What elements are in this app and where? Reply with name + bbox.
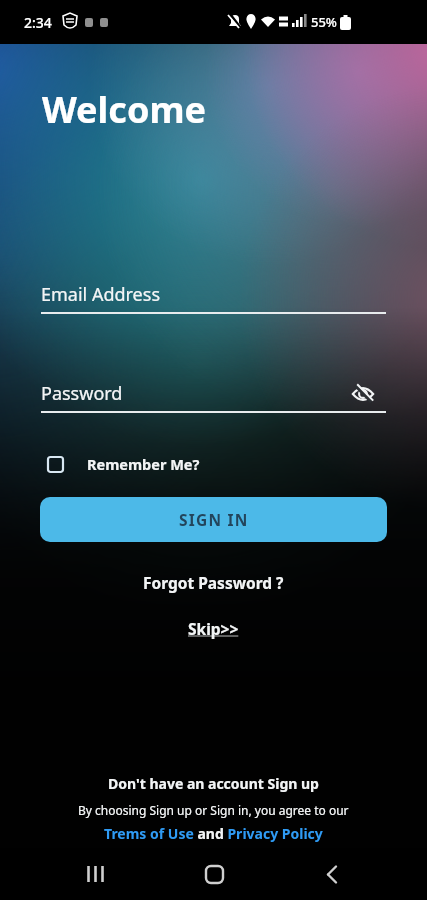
button[interactable]: Skip>> (188, 618, 239, 639)
staticText: Trems of Use and Privacy Policy (104, 824, 323, 843)
button[interactable]: Remember Me? (47, 454, 200, 474)
button[interactable]: SIGN IN (40, 497, 387, 542)
staticText: Welcome (42, 85, 206, 134)
staticText: Remember Me? (87, 454, 200, 474)
button[interactable]: Forgot Password ? (143, 572, 284, 593)
staticText: 2:34 (24, 13, 52, 32)
staticText: By choosing Sign up or Sign in, you agre… (78, 802, 349, 818)
button[interactable]: Trems of Use and Privacy Policy (104, 824, 323, 843)
staticText: Password (41, 381, 123, 406)
button[interactable] (308, 850, 356, 898)
staticText: Forgot Password ? (143, 572, 284, 593)
button[interactable]: Don't have an account Sign up (108, 774, 319, 793)
staticText: 55% (311, 13, 337, 31)
button[interactable]: Email Address (41, 282, 386, 314)
button[interactable]: Password (41, 381, 386, 413)
button[interactable] (190, 850, 238, 898)
staticText: Don't have an account Sign up (108, 774, 319, 793)
staticText: SIGN IN (179, 509, 249, 530)
staticText: Email Address (41, 282, 161, 307)
staticText: Skip>> (188, 618, 239, 639)
button[interactable] (71, 850, 119, 898)
